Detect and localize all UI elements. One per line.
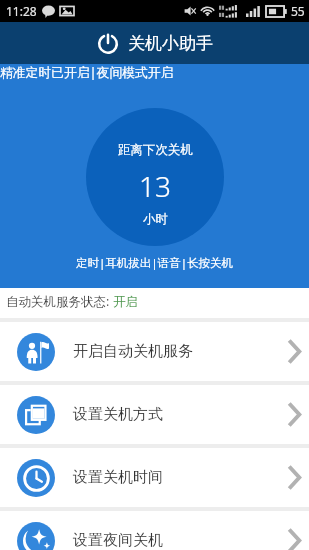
staticText: 设置关机方式	[73, 405, 163, 424]
button[interactable]: 距离下次关机	[86, 108, 224, 246]
staticText: 精准定时已开启|夜间模式开启	[0, 63, 174, 80]
staticText: 自动关机服务状态:	[6, 293, 113, 310]
staticText: 设置夜间关机	[73, 531, 163, 550]
button[interactable]: 设置关机方式	[0, 385, 309, 444]
button[interactable]: 设置夜间关机	[0, 511, 309, 550]
staticText: 11:28	[6, 3, 37, 19]
button[interactable]: 开启自动关机服务	[0, 322, 309, 381]
staticText: 开启自动关机服务	[73, 342, 193, 361]
staticText: 关机小助手	[128, 33, 213, 54]
button[interactable]: 设置关机时间	[0, 448, 309, 507]
staticText: 距离下次关机	[118, 142, 193, 158]
staticText: 定时|耳机拔出|语音|长按关机	[76, 255, 234, 271]
staticText: 小时	[143, 211, 168, 227]
staticText: 13	[139, 167, 171, 205]
staticText: 设置关机时间	[73, 468, 163, 487]
staticText: 55	[291, 3, 305, 19]
staticText: 开启	[113, 294, 138, 310]
